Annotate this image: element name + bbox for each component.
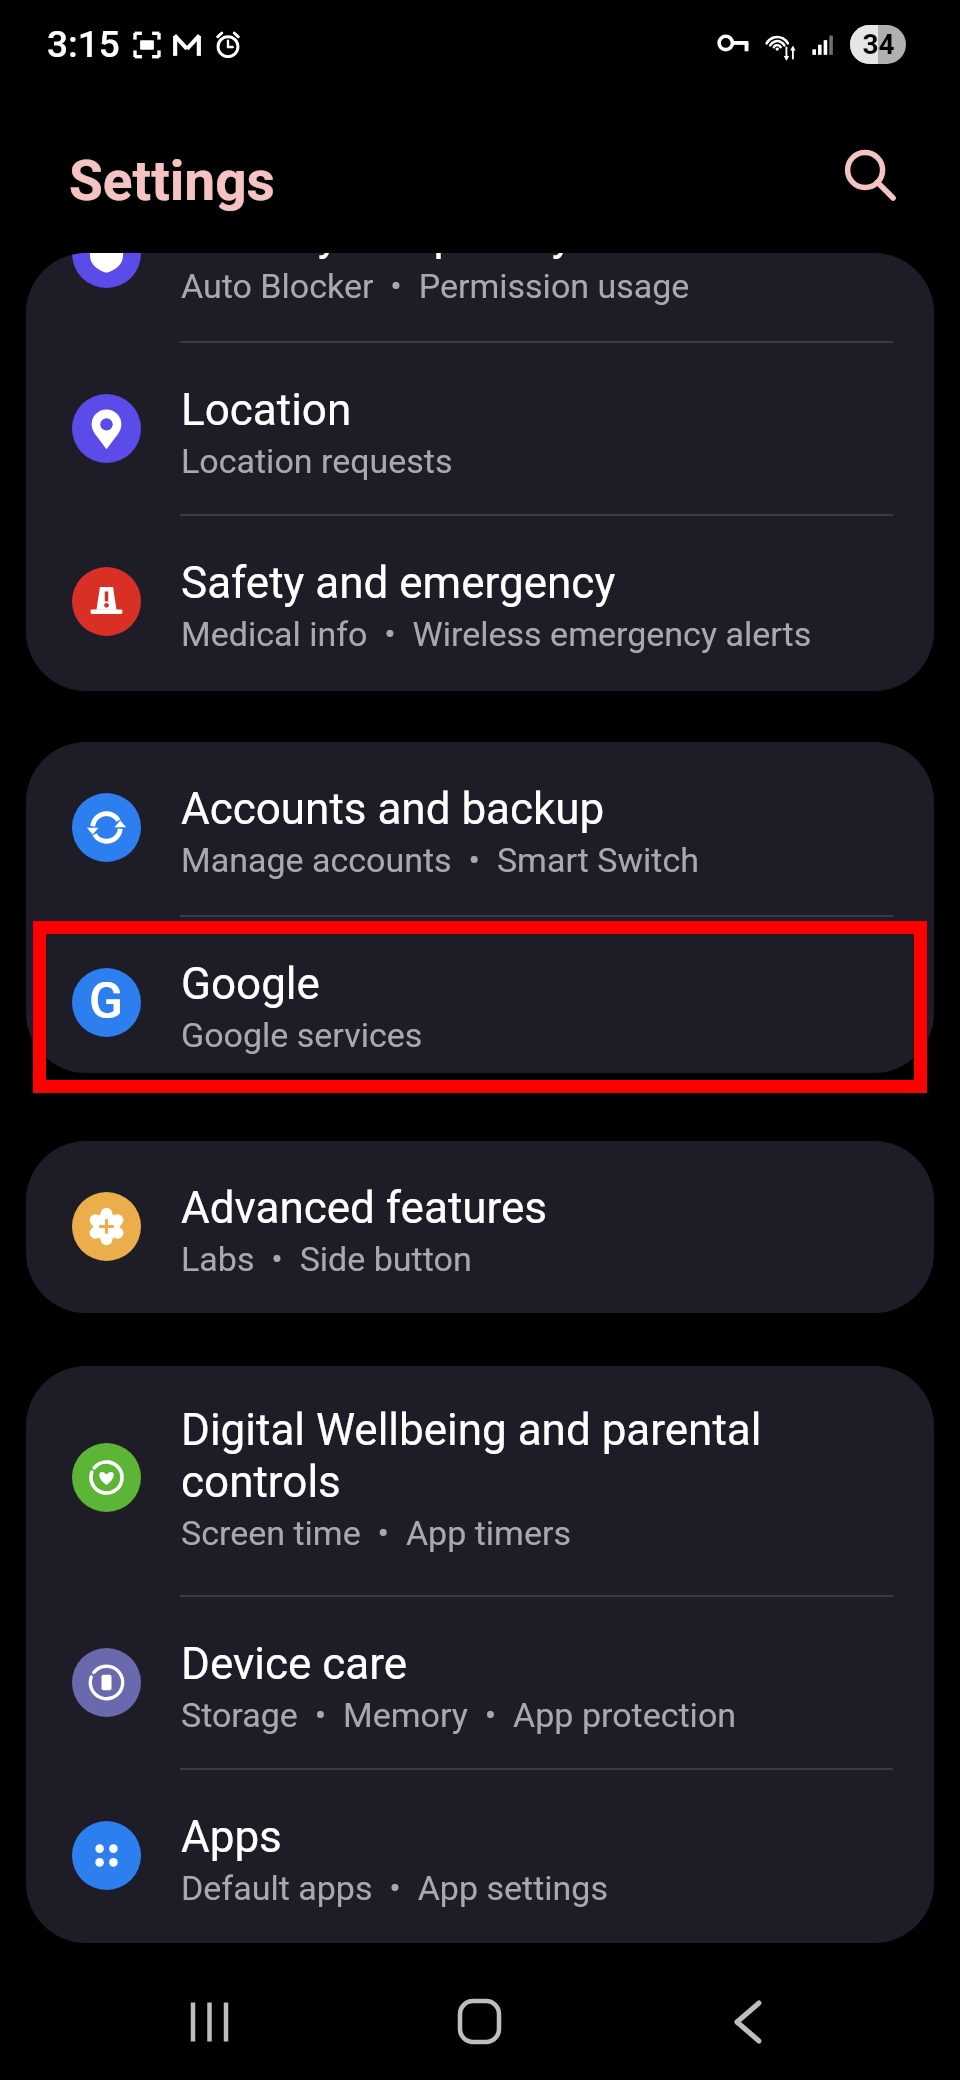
staticText: Storage • Memory • App protection	[181, 1695, 737, 1735]
staticText: Accounts and backup	[181, 783, 605, 835]
button[interactable]: Digital Wellbeing and parental controls	[26, 1366, 934, 1595]
staticText: Location	[181, 384, 352, 436]
staticText: Google	[181, 958, 320, 1010]
staticText: Default apps • App settings	[181, 1868, 608, 1908]
button[interactable]: Location	[26, 343, 934, 514]
staticText: Advanced features	[181, 1182, 548, 1234]
staticText: Location requests	[181, 441, 453, 481]
button[interactable]: G	[26, 917, 934, 1073]
staticText: Medical info • Wireless emergency alerts	[181, 614, 812, 654]
staticText: Settings	[69, 149, 275, 213]
button[interactable]: Home	[420, 1962, 540, 2080]
staticText: Security and privacy	[181, 253, 573, 261]
button[interactable]: Search	[824, 131, 916, 223]
staticText: Digital Wellbeing and parental controls	[181, 1404, 881, 1508]
staticText: Auto Blocker • Permission usage	[181, 266, 690, 306]
button[interactable]: Security and privacy	[26, 253, 934, 341]
staticText: G	[89, 972, 124, 1031]
button[interactable]: Apps	[26, 1770, 934, 1943]
staticText: Screen time • App timers	[181, 1513, 572, 1553]
button[interactable]: Accounts and backup	[26, 742, 934, 915]
staticText: 3:15	[47, 23, 120, 66]
button[interactable]: Back	[688, 1962, 808, 2080]
button[interactable]: Recent apps	[150, 1962, 270, 2080]
button[interactable]: Advanced features	[26, 1141, 934, 1313]
staticText: Labs • Side button	[181, 1239, 472, 1279]
staticText: Manage accounts • Smart Switch	[181, 840, 699, 880]
staticText: 34	[862, 28, 895, 61]
staticText: Device care	[181, 1638, 408, 1690]
staticText: Safety and emergency	[181, 557, 616, 609]
staticText: Google services	[181, 1015, 423, 1055]
button[interactable]: Device care	[26, 1597, 934, 1768]
staticText: Apps	[181, 1811, 282, 1863]
button[interactable]: Safety and emergency	[26, 516, 934, 691]
